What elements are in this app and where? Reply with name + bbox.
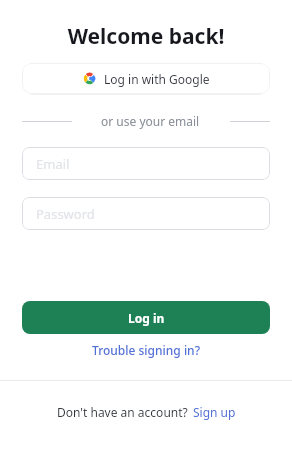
staticText: Trouble signing in?: [92, 342, 201, 358]
button[interactable]: Trouble signing in?: [22, 342, 270, 358]
staticText: Email: [36, 155, 70, 173]
staticText: Welcome back!: [22, 22, 270, 51]
staticText: Log in with Google: [104, 71, 210, 87]
button[interactable]: Log in with Google: [22, 63, 270, 94]
staticText: Log in: [128, 310, 165, 326]
staticText: Sign up: [193, 404, 236, 420]
button[interactable]: Sign up: [193, 404, 236, 420]
button[interactable]: Log in: [22, 301, 270, 334]
staticText: or use your email: [101, 113, 200, 129]
button[interactable]: Password: [22, 197, 270, 230]
staticText: Password: [36, 205, 95, 223]
staticText: Don't have an account?: [57, 404, 188, 420]
button[interactable]: Email: [22, 147, 270, 180]
